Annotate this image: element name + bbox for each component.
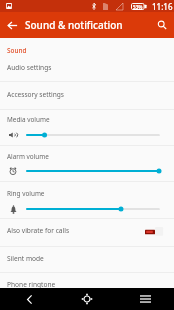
staticText: Sound bbox=[7, 46, 27, 55]
button[interactable]: Sound bbox=[0, 38, 174, 81]
staticText: Audio settings bbox=[7, 63, 52, 72]
button[interactable]: Search bbox=[150, 13, 174, 37]
button[interactable]: Phone ringtone bbox=[0, 273, 174, 293]
button[interactable]: Silent mode bbox=[0, 247, 174, 272]
button[interactable]: Back bbox=[0, 288, 58, 310]
button[interactable]: Home bbox=[58, 288, 116, 310]
staticText: Alarm volume bbox=[7, 152, 49, 161]
button[interactable]: Navigate up bbox=[0, 13, 24, 37]
button[interactable]: Recent apps bbox=[116, 288, 174, 310]
staticText: Ring volume bbox=[7, 189, 45, 198]
button[interactable]: Accessory settings bbox=[0, 82, 174, 109]
staticText: Accessory settings bbox=[7, 90, 64, 99]
staticText: 53% bbox=[133, 4, 143, 10]
button[interactable]: Alarm volume bbox=[0, 146, 174, 181]
staticText: Also vibrate for calls bbox=[7, 226, 70, 235]
staticText: Phone ringtone bbox=[7, 280, 56, 289]
staticText: Media volume bbox=[7, 115, 50, 124]
button[interactable]: Ring volume bbox=[0, 182, 174, 218]
button[interactable]: Media volume bbox=[0, 110, 174, 145]
button[interactable]: Also vibrate for calls bbox=[0, 219, 174, 246]
staticText: 11:16 bbox=[152, 1, 173, 12]
staticText: Sound & notification bbox=[25, 18, 123, 32]
staticText: Silent mode bbox=[7, 254, 44, 263]
